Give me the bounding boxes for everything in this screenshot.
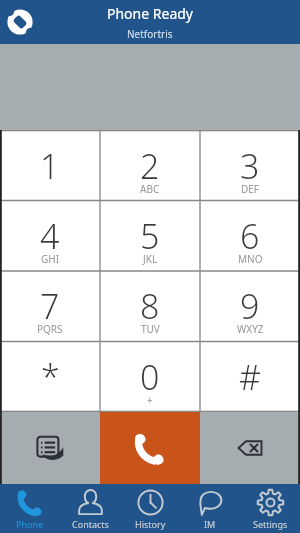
- staticText: 6: [240, 213, 260, 259]
- staticText: 5: [140, 213, 160, 259]
- button[interactable]: #: [200, 341, 300, 412]
- button[interactable]: Settings: [240, 484, 300, 533]
- button[interactable]: Backspace: [200, 412, 300, 484]
- staticText: 0: [140, 354, 160, 400]
- button[interactable]: Send message: [0, 412, 100, 484]
- staticText: 9: [240, 283, 260, 329]
- button[interactable]: 7: [0, 270, 100, 341]
- staticText: PQRS: [37, 322, 63, 336]
- button[interactable]: *: [0, 341, 100, 412]
- button[interactable]: 4: [0, 200, 100, 270]
- staticText: TUV: [141, 322, 160, 336]
- button[interactable]: 6: [200, 200, 300, 270]
- button[interactable]: Account: [6, 8, 34, 36]
- staticText: History: [135, 518, 166, 530]
- staticText: 7: [40, 283, 60, 329]
- staticText: 4: [40, 213, 60, 259]
- staticText: 3: [240, 143, 260, 189]
- staticText: 8: [140, 283, 160, 329]
- staticText: Settings: [253, 518, 288, 530]
- button[interactable]: 2: [100, 130, 200, 200]
- staticText: JKL: [143, 252, 158, 266]
- staticText: 2: [140, 143, 160, 189]
- button[interactable]: 5: [100, 200, 200, 270]
- staticText: GHI: [41, 252, 60, 266]
- staticText: WXYZ: [237, 322, 264, 336]
- staticText: 1: [40, 143, 60, 189]
- staticText: DEF: [241, 182, 260, 196]
- button[interactable]: Contacts: [60, 484, 120, 533]
- button[interactable]: Call: [100, 412, 200, 484]
- button[interactable]: 9: [200, 270, 300, 341]
- staticText: Netfortris: [127, 27, 173, 41]
- staticText: Phone Ready: [107, 4, 193, 23]
- staticText: MNO: [238, 252, 263, 266]
- staticText: *: [41, 354, 60, 400]
- button[interactable]: History: [120, 484, 180, 533]
- button[interactable]: 3: [200, 130, 300, 200]
- staticText: IM: [204, 518, 216, 530]
- staticText: Contacts: [72, 518, 109, 530]
- button[interactable]: 1: [0, 130, 100, 200]
- staticText: +: [147, 393, 153, 407]
- staticText: #: [239, 354, 261, 400]
- staticText: Phone: [16, 518, 44, 530]
- button[interactable]: IM: [180, 484, 240, 533]
- button[interactable]: Phone: [0, 484, 60, 533]
- button[interactable]: 0: [100, 341, 200, 412]
- button[interactable]: 8: [100, 270, 200, 341]
- staticText: ABC: [140, 182, 160, 196]
